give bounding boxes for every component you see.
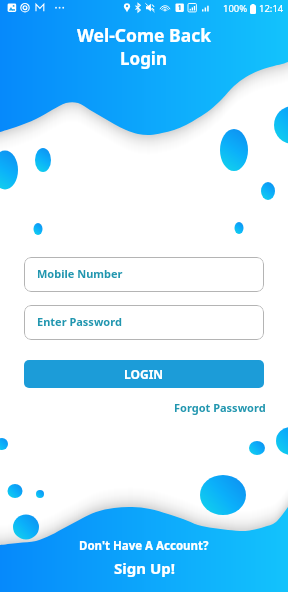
staticText: Wel-Come Back xyxy=(77,23,212,47)
button[interactable]: Enter Password xyxy=(24,305,264,340)
staticText: Don't Have A Account? xyxy=(79,538,209,554)
staticText: 100% xyxy=(223,2,248,15)
button[interactable]: Sign Up! xyxy=(114,558,175,578)
staticText: Mobile Number xyxy=(37,266,123,281)
button[interactable]: LOGIN xyxy=(24,360,264,388)
staticText: Sign Up! xyxy=(114,558,175,578)
other: Status bar xyxy=(0,0,288,16)
button[interactable]: Mobile Number xyxy=(24,257,264,292)
staticText: 12:14 xyxy=(259,2,284,15)
staticText: Enter Password xyxy=(37,314,122,329)
staticText: Forgot Password xyxy=(174,400,266,415)
staticText: LOGIN xyxy=(124,366,164,382)
button[interactable]: Forgot Password xyxy=(174,400,266,415)
staticText: Login xyxy=(120,47,168,70)
